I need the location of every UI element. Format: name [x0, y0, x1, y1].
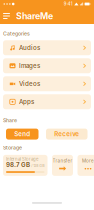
staticText: 9:41 — [64, 1, 73, 7]
staticText: Receive — [54, 130, 79, 138]
staticText: Storage — [3, 145, 22, 151]
staticText: 98.7 GB — [6, 161, 30, 168]
button[interactable]: Audios — [3, 40, 91, 55]
button[interactable]: More — [77, 155, 94, 176]
staticText: Audios — [19, 44, 40, 51]
button[interactable]: Internal Storage — [3, 155, 47, 176]
button[interactable]: Apps — [3, 94, 91, 109]
button[interactable]: Menu — [3, 8, 13, 24]
staticText: ShareMe — [16, 11, 53, 21]
staticText: Videos — [19, 80, 40, 87]
button[interactable]: Images — [3, 58, 91, 73]
staticText: Share — [3, 117, 17, 124]
button[interactable]: Send — [6, 129, 38, 140]
button[interactable]: Videos — [3, 76, 91, 91]
staticText: / 128 GB — [31, 164, 44, 168]
staticText: More — [82, 158, 94, 163]
staticText: Apps — [19, 98, 34, 105]
staticText: Images — [19, 62, 40, 69]
staticText: Transfer — [52, 158, 72, 163]
button[interactable]: Transfer — [52, 155, 73, 176]
staticText: Internal Storage — [6, 157, 38, 162]
staticText: Send — [14, 130, 30, 138]
staticText: Categories — [3, 30, 30, 37]
button[interactable]: Receive — [46, 129, 87, 140]
